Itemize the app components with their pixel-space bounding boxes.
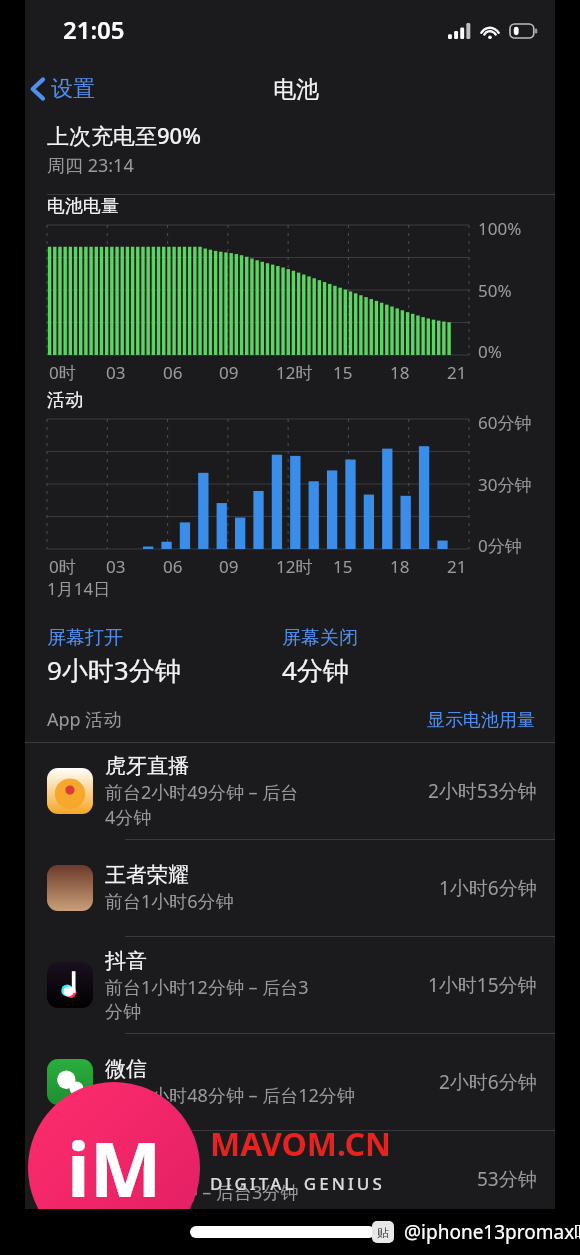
other: 返回 <box>31 77 45 101</box>
staticText: 53分钟 <box>477 1166 537 1192</box>
staticText: 屏幕打开 <box>47 626 123 650</box>
staticText: 21 <box>447 361 467 384</box>
staticText: 电池电量 <box>47 195 119 218</box>
staticText: 抖音 <box>105 948 147 974</box>
staticText: 上次充电至90% <box>47 120 201 150</box>
staticText: iM <box>67 1116 162 1220</box>
staticText: 浏览器 <box>105 1153 168 1179</box>
staticText: 1小时15分钟 <box>428 972 537 998</box>
staticText: 9小时3分钟 <box>47 652 181 688</box>
staticText: 0分钟 <box>478 534 522 557</box>
button[interactable]: 浏览器 <box>25 1131 555 1227</box>
staticText: 微信 <box>105 1056 147 1082</box>
staticText: 12时 <box>276 361 313 384</box>
staticText: 30分钟 <box>478 473 532 496</box>
staticText: MAVOM.CN <box>210 1122 391 1166</box>
staticText: 活动 <box>47 389 83 412</box>
staticText: 王者荣耀 <box>105 862 189 888</box>
button[interactable]: 返回 <box>25 75 105 103</box>
staticText: 前台1小时48分钟 – 后台12分钟 <box>105 1083 355 1108</box>
staticText: 1小时6分钟 <box>439 875 537 901</box>
staticText: 15 <box>333 555 353 578</box>
staticText: 09 <box>219 555 239 578</box>
staticText: 前台2小时49分钟 – 后台 4分钟 <box>105 780 299 829</box>
staticText: 2小时53分钟 <box>428 778 537 804</box>
staticText: @iphone13promax吧 <box>404 1219 580 1245</box>
staticText: 21:05 <box>63 13 125 46</box>
staticText: 06 <box>163 555 183 578</box>
staticText: 09 <box>219 361 239 384</box>
staticText: 前台1小时12分钟 – 后台3 分钟 <box>105 975 309 1023</box>
staticText: 03 <box>106 361 126 384</box>
staticText: 0时 <box>49 361 76 384</box>
staticText: 4分钟 <box>282 652 349 688</box>
staticText: 18 <box>390 555 410 578</box>
staticText: 60分钟 <box>478 411 532 434</box>
button[interactable]: 显示电池用量 <box>427 709 535 732</box>
staticText: 21 <box>447 555 467 578</box>
staticText: 03 <box>106 555 126 578</box>
staticText: 06 <box>163 361 183 384</box>
button[interactable]: 抖音 <box>25 937 555 1033</box>
staticText: 12时 <box>276 555 313 578</box>
staticText: 0% <box>478 340 502 363</box>
staticText: 100% <box>478 217 522 240</box>
staticText: 屏幕关闭 <box>282 626 358 650</box>
staticText: 前台49分钟 – 后台3分钟 <box>105 1180 299 1205</box>
staticText: DIGITAL GENIUS <box>210 1172 385 1195</box>
staticText: 2小时6分钟 <box>439 1069 537 1095</box>
button[interactable]: 王者荣耀 <box>25 840 555 936</box>
staticText: 贴 <box>377 1225 389 1240</box>
staticText: 虎牙直播 <box>105 753 189 779</box>
staticText: 前台1小时6分钟 <box>105 889 234 914</box>
button[interactable]: 微信 <box>25 1034 555 1130</box>
staticText: 0时 <box>49 555 76 578</box>
staticText: 电池 <box>273 75 319 104</box>
staticText: App 活动 <box>47 707 122 732</box>
staticText: 50% <box>478 279 512 302</box>
staticText: 18 <box>390 361 410 384</box>
staticText: 设置 <box>51 75 95 103</box>
staticText: 1月14日 <box>47 577 111 600</box>
staticText: 15 <box>333 361 353 384</box>
button[interactable]: 虎牙直播 <box>25 743 555 839</box>
staticText: 周四 23:14 <box>47 153 134 178</box>
